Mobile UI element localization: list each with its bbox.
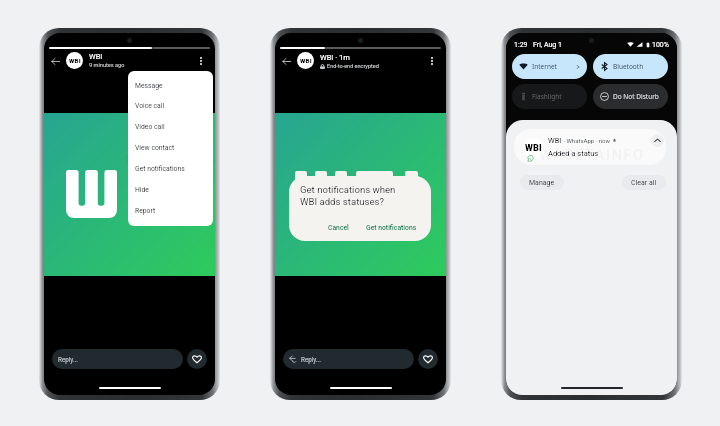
staticText: Bluetooth: [613, 62, 644, 71]
staticText: 100%: [652, 41, 669, 49]
button[interactable]: Get notifications: [128, 158, 213, 179]
button[interactable]: Voice call: [128, 96, 213, 116]
button[interactable]: More options: [193, 53, 208, 68]
staticText: Reply...: [301, 356, 321, 363]
button[interactable]: Manage: [520, 175, 564, 190]
staticText: Manage: [529, 179, 555, 187]
staticText: WBI: [548, 136, 562, 145]
staticText: Message: [135, 82, 163, 90]
button[interactable]: Like: [418, 349, 438, 369]
staticText: End-to-end encrypted: [327, 63, 379, 69]
staticText: Reply...: [58, 356, 78, 363]
staticText: 9 minutes ago: [89, 62, 125, 69]
staticText: Video call: [135, 123, 165, 131]
button[interactable]: Reply...: [52, 349, 183, 369]
staticText: WBI · 1m: [320, 53, 350, 62]
staticText: WABETAINFO: [125, 152, 215, 170]
button[interactable]: Get notifications: [362, 222, 421, 234]
staticText: Get notifications when WBI adds statuses…: [300, 184, 396, 207]
button[interactable]: Clear all: [622, 175, 666, 190]
staticText: Report: [135, 207, 156, 215]
staticText: Cancel: [328, 224, 349, 232]
button[interactable]: Reply...: [283, 349, 414, 369]
staticText: Added a status: [548, 149, 599, 158]
staticText: Get notifications: [135, 165, 185, 173]
staticText: Flashlight: [532, 92, 562, 101]
button[interactable]: Internet: [512, 54, 587, 79]
button[interactable]: Bluetooth: [593, 54, 668, 79]
button[interactable]: More options: [424, 53, 439, 68]
button[interactable]: Back: [279, 54, 293, 68]
button[interactable]: WBI: [514, 129, 666, 165]
staticText: WBI: [525, 143, 542, 154]
button[interactable]: Like: [187, 349, 207, 369]
staticText: WABETAINFO: [539, 146, 645, 164]
staticText: WBI: [89, 52, 103, 61]
button[interactable]: Flashlight: [512, 84, 587, 109]
button[interactable]: Collapse: [651, 134, 664, 147]
staticText: WBI: [69, 57, 81, 64]
staticText: Hide: [135, 186, 149, 194]
staticText: Do Not Disturb: [613, 92, 659, 101]
staticText: Get notifications: [366, 224, 417, 232]
button[interactable]: Hide: [128, 179, 213, 200]
button[interactable]: Cancel: [324, 222, 353, 234]
staticText: Voice call: [135, 102, 165, 110]
button[interactable]: Back: [48, 54, 62, 68]
staticText: Internet: [532, 62, 557, 71]
staticText: Clear all: [631, 179, 657, 187]
button[interactable]: Video call: [128, 116, 213, 137]
staticText: 1:29: [514, 41, 528, 49]
staticText: View contact: [135, 144, 175, 152]
staticText: · WhatsApp · now: [562, 137, 612, 144]
staticText: Fri, Aug 1: [533, 41, 562, 49]
button[interactable]: Do Not Disturb: [593, 84, 668, 109]
button[interactable]: Message: [128, 76, 213, 96]
button[interactable]: Report: [128, 200, 213, 221]
staticText: WBI: [300, 57, 312, 64]
button[interactable]: View contact: [128, 137, 213, 158]
